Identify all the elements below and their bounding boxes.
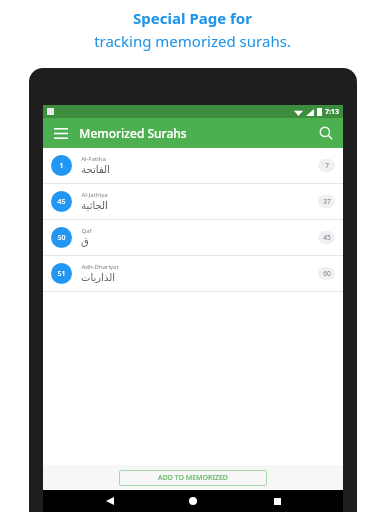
staticText: ق xyxy=(81,236,89,248)
staticText: 45 xyxy=(57,197,66,207)
staticText: Special Page for xyxy=(133,8,252,28)
staticText: Qaf xyxy=(81,227,92,235)
staticText: 7 xyxy=(325,161,329,170)
staticText: 7:13 xyxy=(325,107,339,117)
staticText: الذاريات xyxy=(81,272,115,284)
button[interactable]: ADD TO MEMORIZED xyxy=(119,470,267,486)
staticText: Memorized Surahs xyxy=(79,125,187,141)
staticText: Al-Fatiha xyxy=(81,155,106,163)
button[interactable]: Recent apps xyxy=(260,490,294,512)
button[interactable]: 1 xyxy=(43,148,343,183)
staticText: 37 xyxy=(323,197,331,206)
button[interactable]: Back xyxy=(93,490,127,512)
button[interactable]: Search xyxy=(309,118,343,148)
button[interactable]: Open navigation menu xyxy=(43,118,79,148)
staticText: 51 xyxy=(57,269,66,279)
staticText: 50 xyxy=(57,233,66,243)
staticText: tracking memorized surahs. xyxy=(94,31,291,51)
staticText: Al-Jathiya xyxy=(81,191,108,199)
staticText: 60 xyxy=(323,269,331,278)
button[interactable]: 51 xyxy=(43,256,343,291)
staticText: الفاتحة xyxy=(81,164,110,176)
staticText: 1 xyxy=(59,161,64,171)
staticText: ADD TO MEMORIZED xyxy=(158,473,228,483)
button[interactable]: 45 xyxy=(43,184,343,219)
staticText: Adh-Dhariyat xyxy=(81,263,119,271)
staticText: 45 xyxy=(323,233,331,242)
button[interactable]: Home xyxy=(176,490,210,512)
staticText: الجاثية xyxy=(81,200,108,212)
button[interactable]: 50 xyxy=(43,220,343,255)
